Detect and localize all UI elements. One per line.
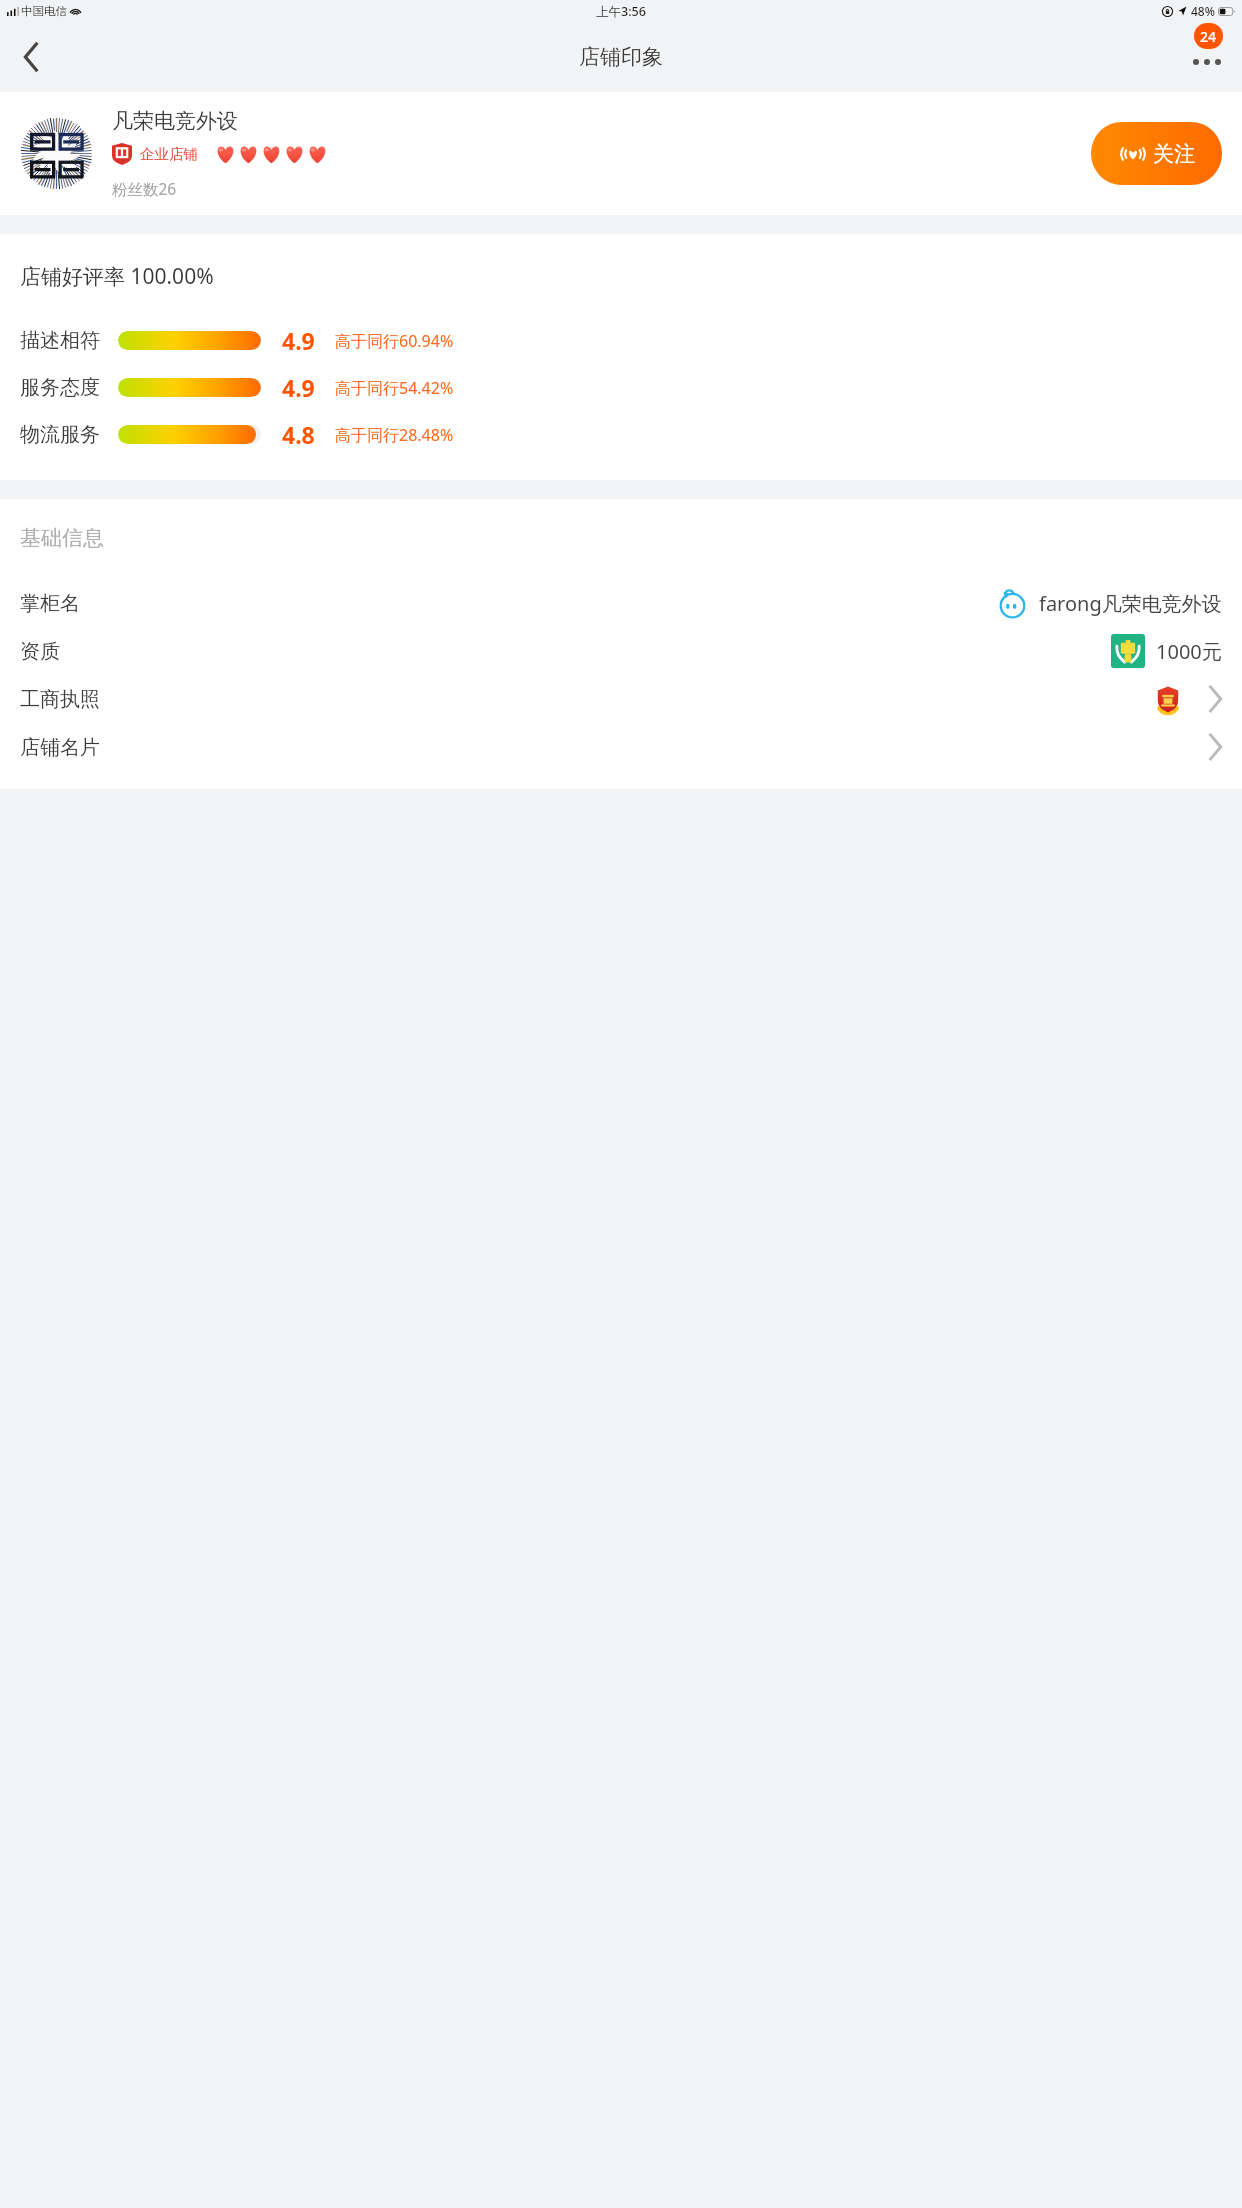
staticText: 高于同行54.42% xyxy=(335,377,454,399)
staticText: 店铺名片 xyxy=(20,735,100,760)
button[interactable]: 工商执照 xyxy=(0,675,1242,723)
staticText: 描述相符 xyxy=(20,328,100,353)
staticText: 4.9 xyxy=(282,325,324,356)
staticText: 服务态度 xyxy=(20,375,100,400)
staticText: 48% xyxy=(1191,3,1215,19)
button[interactable]: 资质 xyxy=(0,627,1242,675)
button[interactable]: 描述相符 xyxy=(0,317,1242,364)
staticText: 粉丝数26 xyxy=(112,178,177,199)
staticText: 凡荣电竞外设 xyxy=(112,108,238,134)
staticText: 企业店铺 xyxy=(140,145,198,163)
staticText: 上午3:56 xyxy=(596,3,646,20)
button[interactable]: 关注 xyxy=(1091,122,1222,185)
staticText: 店铺印象 xyxy=(579,44,663,70)
staticText: 关注 xyxy=(1153,141,1195,167)
staticText: 高于同行28.48% xyxy=(335,424,454,446)
staticText: 高于同行60.94% xyxy=(335,330,454,352)
staticText: 基础信息 xyxy=(20,525,104,551)
button[interactable]: 掌柜名 xyxy=(0,579,1242,627)
button[interactable]: More options xyxy=(1172,22,1242,92)
staticText: 掌柜名 xyxy=(20,591,80,616)
staticText: 24 xyxy=(1200,27,1217,46)
staticText: 物流服务 xyxy=(20,422,100,447)
staticText: 工商执照 xyxy=(20,687,100,712)
button[interactable]: 服务态度 xyxy=(0,364,1242,411)
staticText: farong凡荣电竞外设 xyxy=(1039,590,1222,617)
staticText: 中国电信 xyxy=(21,4,67,18)
button[interactable]: Back xyxy=(0,26,62,88)
staticText: 4.8 xyxy=(282,419,324,450)
staticText: 资质 xyxy=(20,639,60,664)
staticText: 店铺好评率 100.00% xyxy=(20,262,214,291)
staticText: 1000元 xyxy=(1156,638,1222,665)
button[interactable]: 店铺名片 xyxy=(0,723,1242,771)
staticText: 4.9 xyxy=(282,372,324,403)
button[interactable]: 物流服务 xyxy=(0,411,1242,458)
